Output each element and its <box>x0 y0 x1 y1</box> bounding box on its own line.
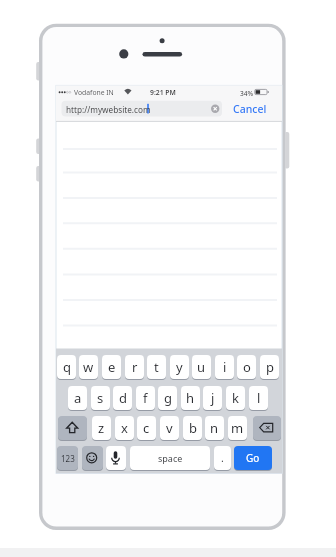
button[interactable] <box>253 416 281 440</box>
button[interactable]: b <box>183 416 202 440</box>
button[interactable]: 123 <box>57 446 78 470</box>
button[interactable]: j <box>203 386 222 410</box>
button[interactable]: q <box>57 355 76 379</box>
staticText: n <box>210 419 219 437</box>
staticText: x <box>121 419 128 437</box>
staticText: p <box>266 358 274 376</box>
staticText: j <box>211 389 215 407</box>
staticText: space <box>158 452 183 464</box>
button[interactable]: d <box>113 386 132 410</box>
staticText: z <box>98 419 105 437</box>
staticText: v <box>166 419 173 437</box>
staticText: o <box>243 358 251 376</box>
button[interactable]: z <box>92 416 111 440</box>
staticText: a <box>74 389 82 407</box>
button[interactable]: e <box>102 355 121 379</box>
staticText: b <box>189 419 197 437</box>
button[interactable]: u <box>192 355 211 379</box>
button[interactable]: x <box>115 416 134 440</box>
button[interactable]: http://mywebsite.com <box>62 101 223 117</box>
staticText: Vodafone IN <box>74 88 114 97</box>
staticText: 34% <box>240 89 254 98</box>
button[interactable]: Go <box>234 446 272 470</box>
button[interactable]: m <box>228 416 247 440</box>
button[interactable]: v <box>160 416 179 440</box>
staticText: c <box>143 419 150 437</box>
staticText: s <box>97 389 104 407</box>
staticText: . <box>221 451 224 465</box>
staticText: m <box>231 419 244 437</box>
button[interactable]: t <box>147 355 166 379</box>
staticText: f <box>143 389 148 407</box>
button[interactable]: w <box>79 355 98 379</box>
button[interactable]: g <box>158 386 177 410</box>
staticText: Go <box>246 451 260 465</box>
staticText: t <box>154 358 159 376</box>
staticText: e <box>108 358 116 376</box>
staticText: d <box>119 389 127 407</box>
button[interactable] <box>58 416 87 440</box>
staticText: q <box>63 358 71 376</box>
button[interactable]: k <box>226 386 245 410</box>
staticText: u <box>197 358 206 376</box>
staticText: l <box>257 389 261 407</box>
button[interactable]: space <box>130 446 210 470</box>
button[interactable]: y <box>170 355 189 379</box>
button[interactable]: i <box>215 355 234 379</box>
button[interactable]: a <box>68 386 87 410</box>
button[interactable] <box>106 446 126 470</box>
button[interactable]: p <box>260 355 279 379</box>
staticText: http://mywebsite.com <box>66 104 151 115</box>
button[interactable] <box>82 446 103 470</box>
staticText: 123 <box>61 453 75 464</box>
button[interactable]: . <box>214 446 231 470</box>
staticText: h <box>186 389 195 407</box>
button[interactable]: n <box>205 416 224 440</box>
staticText: w <box>83 358 94 376</box>
button[interactable]: r <box>125 355 144 379</box>
button[interactable]: s <box>91 386 110 410</box>
button[interactable]: h <box>181 386 200 410</box>
button[interactable]: o <box>237 355 256 379</box>
staticText: k <box>232 389 239 407</box>
staticText: y <box>176 358 183 376</box>
staticText: r <box>132 358 138 376</box>
button[interactable]: l <box>249 386 268 410</box>
button[interactable]: Cancel <box>228 100 272 117</box>
staticText: i <box>223 358 227 376</box>
staticText: Cancel <box>233 102 267 116</box>
button[interactable]: f <box>136 386 155 410</box>
staticText: 9:21 PM <box>150 88 176 97</box>
button[interactable]: c <box>137 416 156 440</box>
staticText: g <box>164 389 172 407</box>
